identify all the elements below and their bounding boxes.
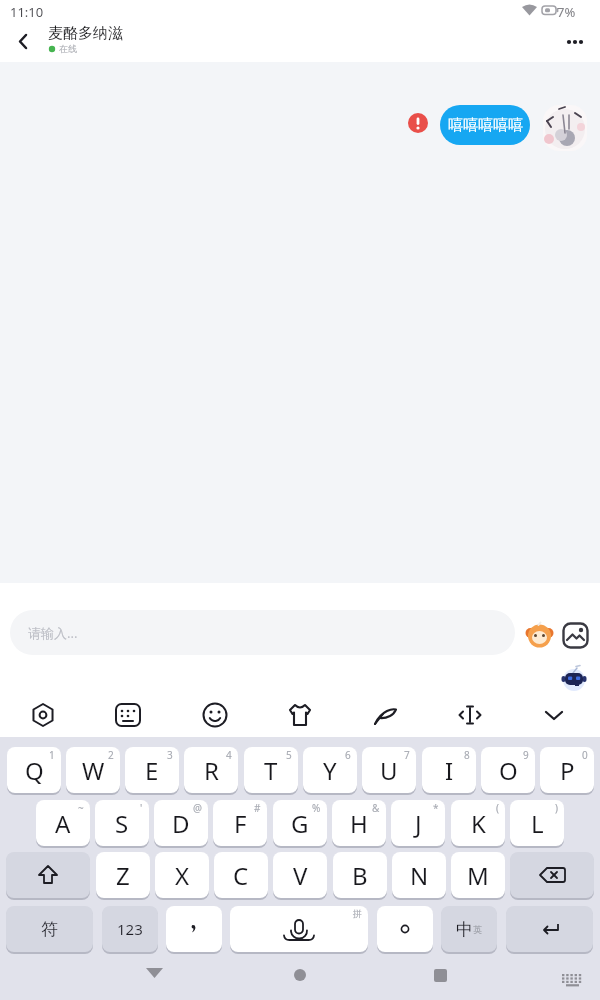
button[interactable]: 嘻嘻嘻嘻嘻 [440,105,530,145]
button[interactable] [166,906,222,952]
staticText: 3 [167,748,173,762]
staticText: % [312,801,321,815]
button[interactable] [377,906,433,952]
staticText: 嘻嘻嘻嘻嘻 [448,116,523,135]
staticText: W [82,754,105,787]
staticText: J [415,807,422,840]
staticText: 麦酪多纳滋 [48,24,123,43]
staticText: ~ [78,801,84,815]
staticText: 符 [41,919,58,940]
button[interactable] [29,701,57,729]
button[interactable] [526,622,553,649]
button[interactable]: R [184,747,238,793]
staticText: 在线 [59,43,77,54]
staticText: G [291,807,309,840]
button[interactable]: 请输入... [10,610,515,655]
button[interactable] [286,701,314,729]
staticText: B [352,859,368,892]
staticText: Q [25,754,44,787]
staticText: S [115,807,129,840]
button[interactable]: M [451,852,505,898]
button[interactable]: B [333,852,387,898]
staticText: # [254,801,261,815]
staticText: 英 [473,924,482,935]
staticText: * [433,801,439,815]
staticText: Z [116,859,130,892]
staticText: C [233,859,249,892]
staticText: 2 [108,748,114,762]
staticText: K [471,807,486,840]
button[interactable]: C [214,852,268,898]
staticText: X [175,859,190,892]
staticText: R [204,754,219,787]
button[interactable] [556,659,592,691]
button[interactable]: D [154,800,208,846]
staticText: F [234,807,247,840]
staticText: N [410,859,429,892]
button[interactable]: L [510,800,564,846]
button[interactable]: 拼 [230,906,368,952]
button[interactable]: 麦酪多纳滋 [48,24,123,54]
button[interactable] [8,28,38,58]
button[interactable]: O [481,747,535,793]
staticText: 5 [286,748,292,762]
staticText: M [467,859,489,892]
button[interactable] [506,906,593,952]
button[interactable]: J [391,800,445,846]
staticText: V [293,859,308,892]
staticText: 请输入... [28,624,78,642]
staticText: & [372,801,380,815]
staticText: 8 [464,748,470,762]
staticText: 123 [117,919,143,939]
button[interactable]: T [244,747,298,793]
staticText: 7% [557,3,576,21]
button[interactable] [371,701,399,729]
button[interactable]: E [125,747,179,793]
staticText: Y [323,754,337,787]
button[interactable]: V [273,852,327,898]
button[interactable]: 123 [102,906,158,952]
staticText: 中 [456,919,473,940]
staticText: O [499,754,518,787]
button[interactable]: A [36,800,90,846]
button[interactable]: W [66,747,120,793]
button[interactable]: I [422,747,476,793]
staticText: 4 [226,748,232,762]
staticText: D [172,807,190,840]
button[interactable]: Q [7,747,61,793]
staticText: 6 [345,748,351,762]
staticText: ) [555,801,558,815]
button[interactable]: 符 [6,906,93,952]
staticText: ( [496,801,499,815]
button[interactable] [560,32,590,52]
button[interactable]: X [155,852,209,898]
button[interactable] [562,622,589,649]
button[interactable]: U [362,747,416,793]
button[interactable] [114,701,142,729]
staticText: I [445,754,454,787]
button[interactable]: 中 [441,906,497,952]
staticText: @ [193,801,202,815]
staticText: L [531,807,544,840]
staticText: 11:10 [10,3,44,21]
button[interactable] [6,852,90,898]
staticText: 0 [582,748,588,762]
staticText: U [380,754,398,787]
button[interactable] [540,701,568,729]
staticText: 拼 [353,908,362,919]
staticText: T [264,754,278,787]
button[interactable]: P [540,747,594,793]
button[interactable]: F [213,800,267,846]
button[interactable]: K [451,800,505,846]
button[interactable]: N [392,852,446,898]
button[interactable]: H [332,800,386,846]
button[interactable] [456,701,484,729]
button[interactable]: S [95,800,149,846]
button[interactable]: Y [303,747,357,793]
staticText: 9 [523,748,529,762]
button[interactable] [541,105,589,151]
button[interactable]: G [273,800,327,846]
button[interactable] [201,701,229,729]
button[interactable] [510,852,594,898]
button[interactable]: Z [96,852,150,898]
